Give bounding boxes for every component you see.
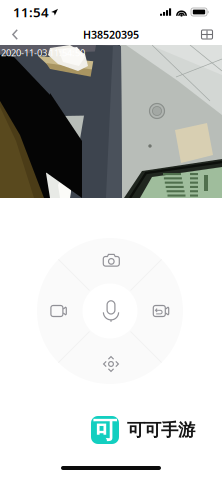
staticText: 2020-11-03 11:54:50 (1, 46, 85, 59)
button[interactable]: Split view (192, 24, 222, 44)
staticText: H38520395 (83, 27, 139, 42)
button[interactable]: Back (0, 24, 30, 44)
staticText: 可 (93, 415, 117, 445)
staticText: 11:54 (13, 3, 49, 21)
button[interactable]: Playback (139, 291, 183, 331)
staticText: 可可手游 (127, 419, 195, 441)
button[interactable]: Pan and tilt (89, 344, 133, 384)
button[interactable]: Snapshot (88, 240, 134, 280)
button[interactable]: Talk (85, 285, 137, 337)
button[interactable]: Record (37, 291, 81, 331)
